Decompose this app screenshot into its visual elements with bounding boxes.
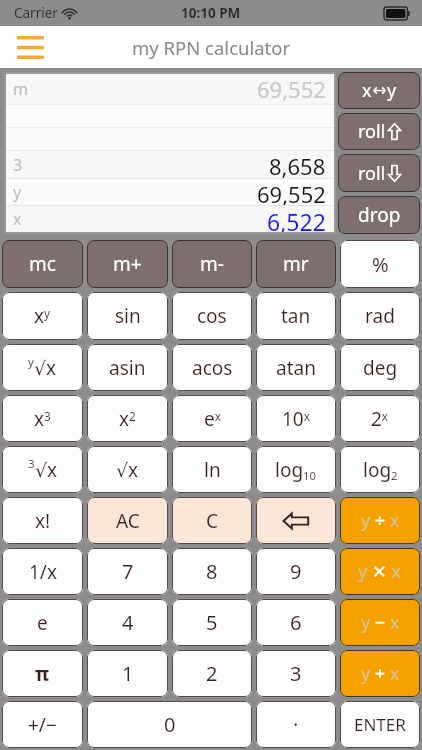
- staticText: +/−: [28, 712, 57, 738]
- button[interactable]: tan: [256, 292, 336, 340]
- staticText: 7: [122, 558, 134, 585]
- button[interactable]: m: [6, 74, 334, 232]
- staticText: 69,552: [257, 179, 326, 205]
- button[interactable]: asin: [87, 344, 168, 391]
- staticText: acos: [192, 355, 233, 381]
- button[interactable]: ex: [172, 395, 252, 442]
- button[interactable]: acos: [172, 344, 252, 391]
- button[interactable]: ln: [172, 446, 252, 493]
- staticText: tan: [281, 303, 311, 329]
- staticText: √x: [34, 355, 57, 381]
- button[interactable]: cos: [172, 292, 252, 340]
- staticText: y ✕ x: [358, 559, 402, 584]
- staticText: 3: [28, 456, 35, 472]
- button[interactable]: +/−: [2, 701, 83, 748]
- button[interactable]: ENTER: [340, 701, 420, 748]
- staticText: 3: [13, 154, 23, 176]
- button[interactable]: y + x: [340, 650, 420, 697]
- staticText: y ÷ x: [361, 508, 400, 533]
- button[interactable]: rad: [340, 292, 420, 340]
- button[interactable]: log10: [256, 446, 336, 493]
- staticText: log2: [363, 457, 398, 483]
- button[interactable]: Backspace: [256, 497, 336, 544]
- staticText: 9: [290, 558, 302, 585]
- button[interactable]: x!: [2, 497, 83, 544]
- staticText: x!: [35, 508, 51, 534]
- button[interactable]: 9: [256, 548, 336, 595]
- button[interactable]: 3: [2, 446, 83, 493]
- button[interactable]: 5: [172, 599, 252, 646]
- staticText: ·: [293, 711, 299, 738]
- button[interactable]: atan: [256, 344, 336, 391]
- button[interactable]: ·: [256, 701, 336, 748]
- button[interactable]: 1: [87, 650, 168, 697]
- button[interactable]: y − x: [340, 599, 420, 646]
- button[interactable]: √x: [87, 446, 168, 493]
- staticText: 1: [122, 660, 134, 687]
- button[interactable]: 2x: [340, 395, 420, 442]
- staticText: atan: [276, 355, 316, 381]
- button[interactable]: 2: [172, 650, 252, 697]
- staticText: 6: [290, 609, 302, 636]
- button[interactable]: mc: [2, 240, 83, 288]
- button[interactable]: y ÷ x: [340, 497, 420, 544]
- staticText: 2x: [371, 406, 389, 432]
- staticText: m-: [200, 251, 224, 277]
- staticText: x3: [34, 406, 51, 432]
- button[interactable]: y ✕ x: [340, 548, 420, 595]
- button[interactable]: 10x: [256, 395, 336, 442]
- button[interactable]: y: [2, 344, 83, 391]
- button[interactable]: 1/x: [2, 548, 83, 595]
- staticText: AC: [116, 508, 140, 534]
- staticText: m+: [113, 251, 142, 277]
- button[interactable]: 6: [256, 599, 336, 646]
- button[interactable]: x: [338, 72, 420, 109]
- staticText: asin: [109, 355, 146, 381]
- button[interactable]: 8: [172, 548, 252, 595]
- button[interactable]: roll: [338, 154, 420, 192]
- button[interactable]: x2: [87, 395, 168, 442]
- staticText: %: [372, 251, 389, 278]
- staticText: 69,552: [257, 74, 326, 104]
- staticText: 4: [122, 609, 134, 636]
- button[interactable]: m-: [172, 240, 252, 288]
- staticText: e: [37, 610, 48, 636]
- staticText: y: [13, 181, 22, 203]
- staticText: rad: [365, 303, 395, 329]
- button[interactable]: AC: [87, 497, 168, 544]
- button[interactable]: roll: [338, 113, 420, 150]
- staticText: deg: [363, 355, 398, 381]
- staticText: y: [387, 78, 397, 103]
- staticText: drop: [358, 202, 401, 228]
- button[interactable]: x3: [2, 395, 83, 442]
- staticText: roll: [358, 161, 386, 186]
- button[interactable]: e: [2, 599, 83, 646]
- staticText: my RPN calculator: [132, 35, 291, 60]
- button[interactable]: 3: [256, 650, 336, 697]
- button[interactable]: mr: [256, 240, 336, 288]
- staticText: x: [13, 208, 22, 230]
- staticText: 2: [206, 660, 218, 687]
- button[interactable]: m+: [87, 240, 168, 288]
- staticText: cos: [197, 303, 227, 329]
- button[interactable]: deg: [340, 344, 420, 391]
- staticText: sin: [115, 303, 141, 329]
- button[interactable]: 0: [87, 701, 252, 748]
- staticText: 5: [206, 609, 218, 636]
- button[interactable]: drop: [338, 196, 420, 234]
- button[interactable]: log2: [340, 446, 420, 493]
- button[interactable]: Menu: [8, 27, 52, 67]
- button[interactable]: C: [172, 497, 252, 544]
- button[interactable]: 4: [87, 599, 168, 646]
- button[interactable]: π: [2, 650, 83, 697]
- staticText: roll: [358, 119, 386, 144]
- staticText: x2: [119, 406, 136, 432]
- staticText: ex: [204, 406, 221, 432]
- button[interactable]: %: [340, 240, 420, 288]
- staticText: 10x: [282, 406, 310, 432]
- staticText: log10: [275, 457, 317, 483]
- button[interactable]: 7: [87, 548, 168, 595]
- button[interactable]: xy: [2, 292, 83, 340]
- staticText: 8,658: [269, 151, 326, 178]
- button[interactable]: sin: [87, 292, 168, 340]
